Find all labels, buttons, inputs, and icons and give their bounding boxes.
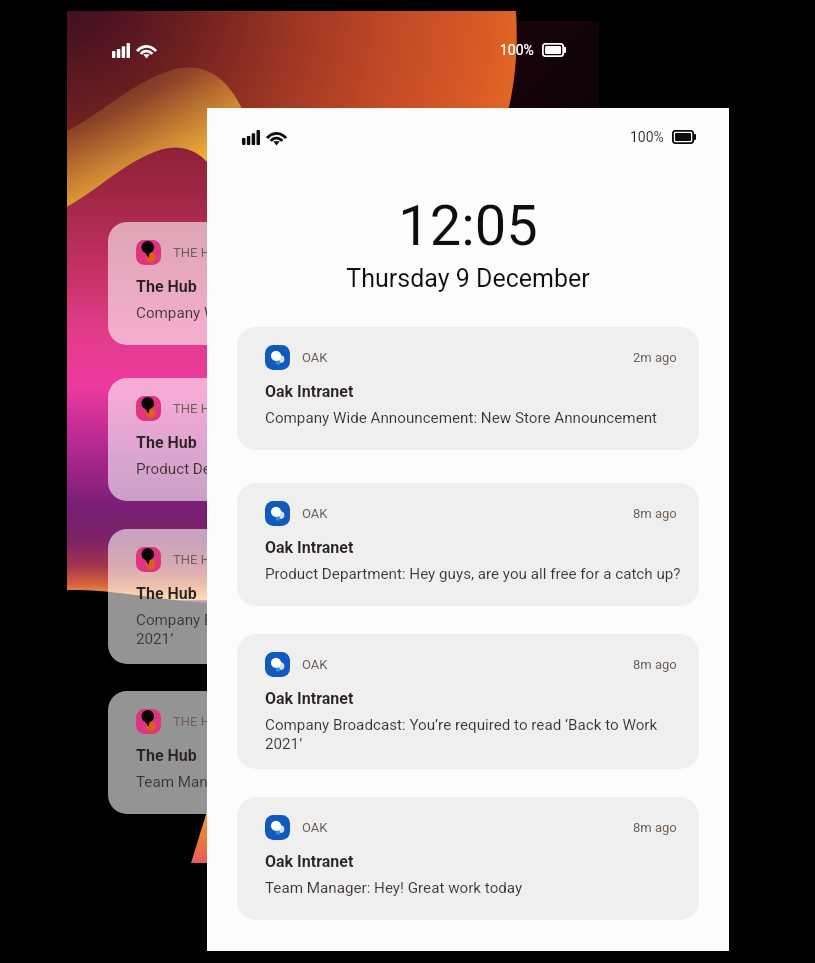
staticText: Oak Intranet (265, 852, 354, 871)
staticText: OAK (302, 820, 328, 835)
button[interactable]: THE HUB (108, 222, 568, 345)
button[interactable]: OAK (237, 634, 699, 769)
staticText: 2m ago (502, 714, 546, 729)
staticText: 2m ago (502, 245, 546, 260)
button[interactable]: OAK (237, 797, 699, 920)
staticText: 100% (500, 42, 534, 58)
staticText: 2m ago (633, 350, 677, 365)
staticText: Thursday 9 December (207, 264, 729, 293)
staticText: 2m ago (502, 401, 546, 416)
staticText: THE HUB (173, 401, 227, 416)
staticText: Team Manager: Hey! Great work today (136, 773, 394, 791)
staticText: Company Wide Announcement: New Store Ann… (265, 409, 658, 427)
button[interactable]: THE HUB (108, 378, 568, 501)
button[interactable]: OAK (237, 483, 699, 606)
staticText: 100% (630, 129, 664, 145)
staticText: THE HUB (173, 552, 227, 567)
staticText: Oak Intranet (265, 689, 354, 708)
staticText: Company Broadcast: You’re required to re… (265, 716, 685, 753)
button[interactable]: THE HUB (108, 691, 568, 814)
button[interactable]: THE HUB (108, 529, 568, 664)
staticText: Oak Intranet (265, 382, 354, 401)
button[interactable]: OAK (237, 327, 699, 450)
staticText: OAK (302, 350, 328, 365)
staticText: The Hub (136, 746, 197, 765)
staticText: Oak Intranet (265, 538, 354, 557)
staticText: Product Department: Hey guys, are you al… (265, 565, 681, 583)
staticText: The Hub (136, 277, 197, 296)
staticText: OAK (302, 657, 328, 672)
staticText: 12:05 (207, 193, 729, 259)
staticText: THE HUB (173, 245, 227, 260)
staticText: THE HUB (173, 714, 227, 729)
staticText: Team Manager: Hey! Great work today (265, 879, 523, 897)
staticText: Product Department: Hey guys, are you al… (136, 460, 552, 478)
staticText: 8m ago (633, 820, 677, 835)
staticText: OAK (302, 506, 328, 521)
staticText: Company Broadcast: You’re required to re… (136, 611, 554, 648)
staticText: 8m ago (633, 657, 677, 672)
staticText: The Hub (136, 433, 197, 452)
staticText: 8m ago (633, 506, 677, 521)
staticText: The Hub (136, 584, 197, 603)
staticText: Company Wide Announcement: New Store Ann… (136, 304, 529, 322)
